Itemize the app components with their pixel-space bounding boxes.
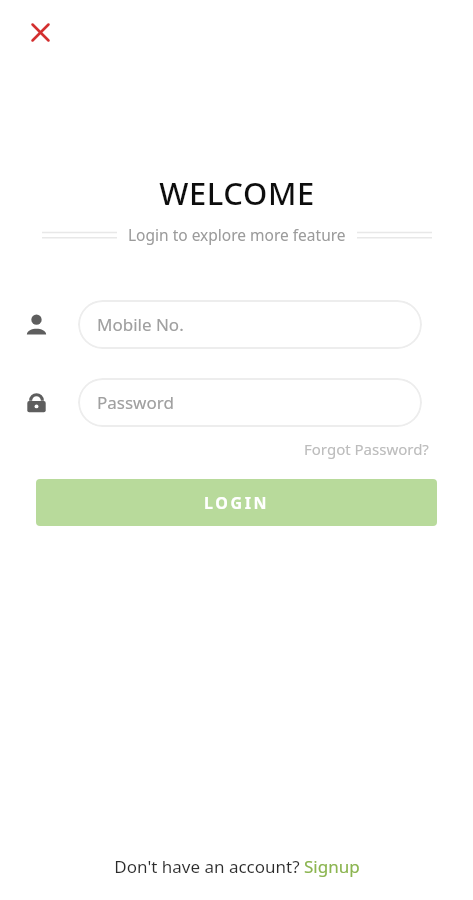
button[interactable]: LOGIN — [36, 479, 437, 526]
staticText: Password — [97, 391, 174, 414]
button[interactable]: Forgot Password? — [302, 435, 431, 463]
staticText: WELCOME — [159, 172, 315, 214]
staticText: LOGIN — [204, 492, 270, 514]
staticText: Don't have an account? Signup — [114, 855, 360, 878]
staticText: Login to explore more feature — [128, 224, 346, 245]
button[interactable]: Don't have an account? Signup — [108, 851, 366, 882]
button[interactable]: Password — [78, 378, 422, 427]
button[interactable]: Mobile No. — [78, 300, 422, 349]
staticText: Mobile No. — [97, 313, 184, 336]
button[interactable]: Close — [18, 10, 62, 54]
staticText: Forgot Password? — [304, 439, 429, 459]
